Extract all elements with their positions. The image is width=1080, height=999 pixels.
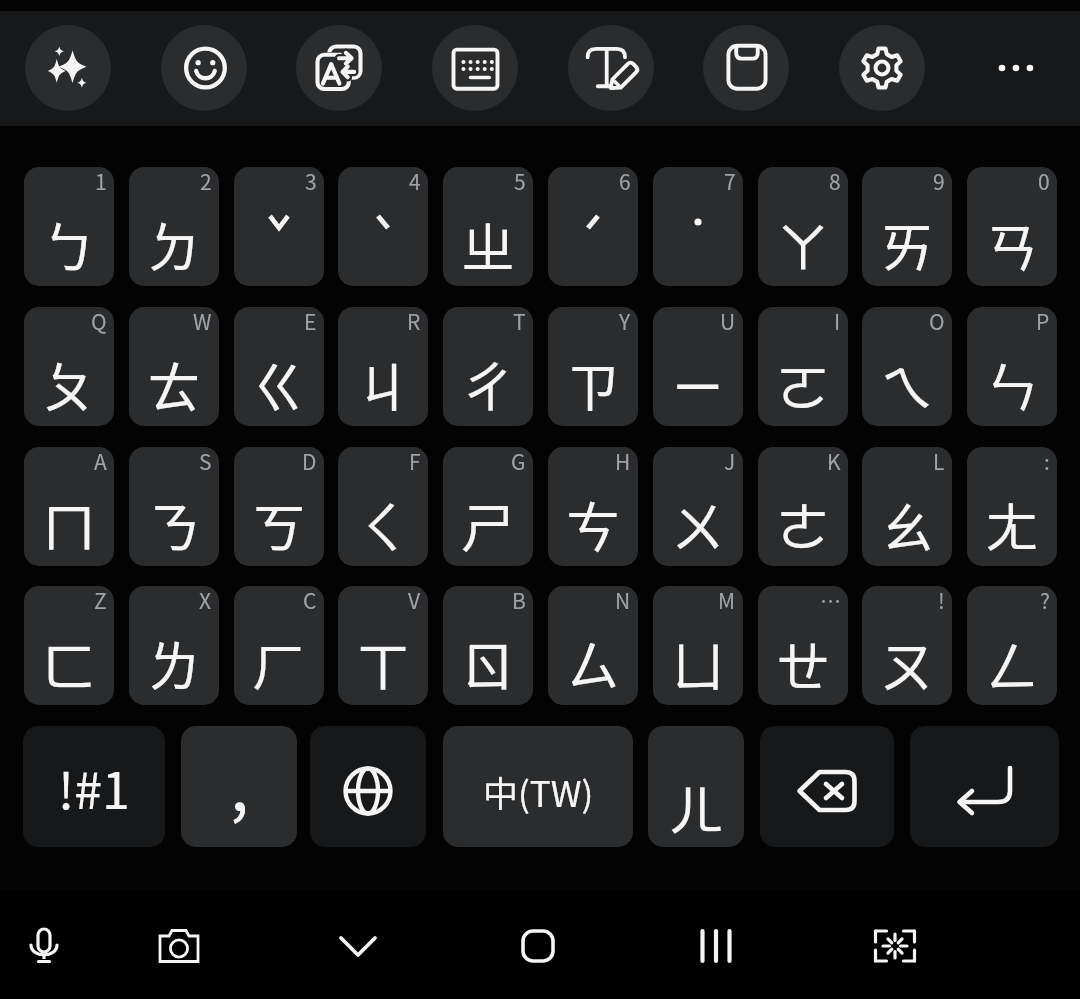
button[interactable]: Voice input (9, 911, 79, 981)
staticText: ㄊ (147, 345, 201, 423)
button[interactable]: J (653, 447, 743, 566)
button[interactable]: O (862, 307, 952, 426)
staticText: Q (91, 307, 107, 336)
button[interactable]: K (758, 447, 848, 566)
button[interactable]: Clipboard (703, 25, 789, 111)
staticText: ㄎ (252, 485, 306, 563)
button[interactable]: 中(TW) (443, 726, 633, 847)
staticText: ㄛ (776, 345, 830, 423)
staticText: ㄞ (880, 205, 934, 283)
button[interactable]: V (338, 586, 428, 705)
button[interactable]: … (758, 586, 848, 705)
button[interactable]: Camera (144, 911, 214, 981)
staticText: ㄩ (671, 624, 725, 702)
button[interactable]: B (443, 586, 533, 705)
button[interactable]: U (653, 307, 743, 426)
button[interactable]: Backspace (760, 726, 894, 847)
staticText: 5 (514, 167, 526, 196)
button[interactable]: 7 (653, 167, 743, 286)
staticText: 9 (933, 167, 945, 196)
button[interactable]: 1 (24, 167, 114, 286)
staticText: ㄓ (461, 205, 515, 283)
button[interactable]: A (24, 447, 114, 566)
button[interactable]: , (181, 726, 297, 847)
staticText: R (407, 307, 421, 336)
button[interactable]: 4 (338, 167, 428, 286)
button[interactable]: D (234, 447, 324, 566)
button[interactable]: Home (503, 911, 573, 981)
staticText: ㄘ (566, 485, 620, 563)
button[interactable]: 9 (862, 167, 952, 286)
button[interactable]: M (653, 586, 743, 705)
button[interactable]: E (234, 307, 324, 426)
staticText: 6 (619, 167, 631, 196)
button[interactable]: T (443, 307, 533, 426)
staticText: ㄠ (880, 485, 934, 563)
button[interactable]: R (338, 307, 428, 426)
button[interactable]: Y (548, 307, 638, 426)
staticText: S (199, 447, 212, 476)
staticText: H (615, 447, 631, 476)
staticText: ㄕ (461, 485, 515, 563)
staticText: W (193, 307, 212, 336)
button[interactable]: P (967, 307, 1057, 426)
button[interactable]: 8 (758, 167, 848, 286)
staticText: Z (94, 586, 107, 615)
button[interactable]: W (129, 307, 219, 426)
staticText: ㄟ (880, 345, 934, 423)
button[interactable]: ㄦ (648, 726, 744, 847)
staticText: … (820, 586, 841, 615)
staticText: A (94, 447, 107, 476)
button[interactable]: More options (971, 25, 1057, 111)
button[interactable]: 5 (443, 167, 533, 286)
button[interactable]: Enter (910, 726, 1059, 847)
button[interactable]: C (234, 586, 324, 705)
button[interactable]: G (443, 447, 533, 566)
button[interactable]: ? (967, 586, 1057, 705)
staticText: E (304, 307, 317, 336)
staticText: ㄢ (985, 205, 1039, 283)
button[interactable]: Hide keyboard (323, 911, 393, 981)
button[interactable]: I (758, 307, 848, 426)
button[interactable]: X (129, 586, 219, 705)
staticText: ㄝ (776, 624, 830, 702)
button[interactable]: Translate (296, 25, 382, 111)
button[interactable]: Q (24, 307, 114, 426)
staticText: ㄒ (356, 624, 410, 702)
staticText: ㄈ (42, 624, 96, 702)
button[interactable]: H (548, 447, 638, 566)
staticText: ㄉ (147, 205, 201, 283)
button[interactable]: Settings (839, 25, 925, 111)
button[interactable]: Recent apps (681, 911, 751, 981)
staticText: 8 (829, 167, 841, 196)
button[interactable]: Suggestions (25, 25, 111, 111)
staticText: : (1044, 447, 1050, 476)
button[interactable]: 0 (967, 167, 1057, 286)
staticText: D (302, 447, 317, 476)
button[interactable]: S (129, 447, 219, 566)
button[interactable]: Keyboard modes (432, 25, 518, 111)
staticText: U (720, 307, 736, 336)
button[interactable]: Resize keyboard (860, 911, 930, 981)
button[interactable]: 2 (129, 167, 219, 286)
button[interactable]: : (967, 447, 1057, 566)
button[interactable]: N (548, 586, 638, 705)
button[interactable]: Z (24, 586, 114, 705)
button[interactable]: ! (862, 586, 952, 705)
button[interactable]: 3 (234, 167, 324, 286)
button[interactable]: Handwriting (568, 25, 654, 111)
staticText: 中(TW) (483, 766, 594, 817)
button[interactable]: 6 (548, 167, 638, 286)
staticText: ! (938, 586, 945, 615)
button[interactable]: !#1 (23, 726, 165, 847)
staticText: ㄅ (42, 205, 96, 283)
button[interactable]: L (862, 447, 952, 566)
button[interactable]: Emoji (161, 25, 247, 111)
staticText: ㄆ (42, 345, 96, 423)
button[interactable]: F (338, 447, 428, 566)
staticText: ㄜ (776, 485, 830, 563)
staticText: J (724, 447, 736, 476)
staticText: ? (1040, 586, 1050, 615)
button[interactable]: Change language (310, 726, 426, 847)
staticText: 7 (724, 167, 736, 196)
